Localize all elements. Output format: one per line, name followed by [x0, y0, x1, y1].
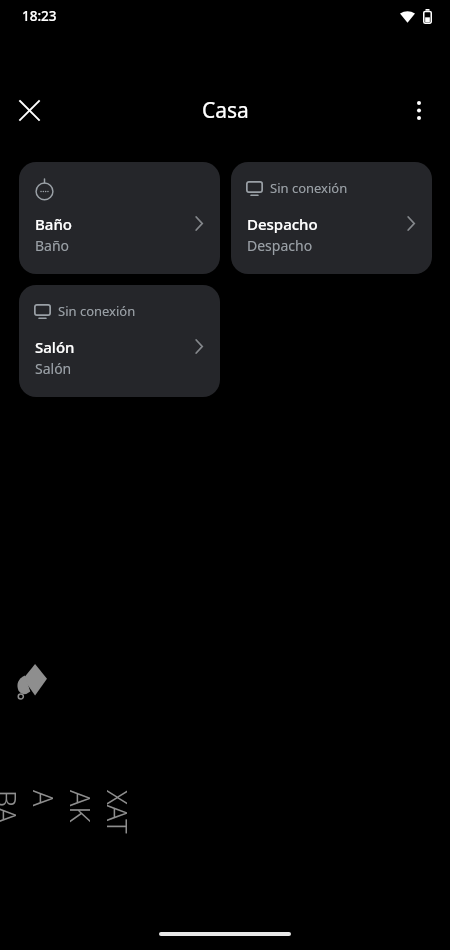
- staticText: Sin conexión: [58, 302, 136, 320]
- staticText: Despacho: [247, 236, 313, 255]
- staticText: 18:23: [22, 7, 57, 25]
- button[interactable]: Baño: [19, 162, 220, 274]
- button[interactable]: More options: [397, 88, 441, 132]
- staticText: Sin conexión: [270, 179, 348, 197]
- button[interactable]: Close: [7, 88, 51, 132]
- staticText: Despacho: [247, 214, 318, 234]
- button[interactable]: Sin conexión: [231, 162, 432, 274]
- staticText: Casa: [202, 96, 249, 125]
- staticText: Baño: [35, 214, 72, 234]
- button[interactable]: Sin conexión: [19, 285, 220, 397]
- staticText: Salón: [35, 337, 75, 357]
- staticText: XATAKA BASICS: [0, 790, 136, 836]
- staticText: Baño: [35, 236, 70, 255]
- staticText: Salón: [35, 359, 72, 378]
